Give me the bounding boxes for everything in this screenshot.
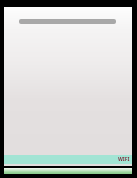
button[interactable]: WIFI xyxy=(4,155,132,164)
button[interactable]: Progress xyxy=(19,19,116,24)
button[interactable] xyxy=(4,168,132,174)
staticText: WIFI xyxy=(118,156,130,163)
